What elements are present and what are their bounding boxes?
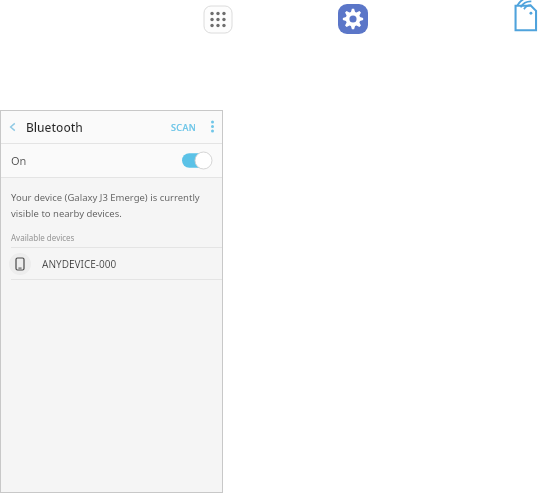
staticText: ANYDEVICE-000 bbox=[42, 257, 117, 271]
button[interactable]: SCAN bbox=[167, 121, 201, 133]
staticText: Available devices bbox=[11, 232, 75, 243]
button[interactable]: On bbox=[0, 144, 223, 177]
button[interactable]: More options bbox=[201, 110, 223, 143]
staticText: Your device (Galaxy J3 Emerge) is curren… bbox=[11, 191, 200, 204]
button[interactable]: Back bbox=[0, 110, 26, 143]
button[interactable]: Settings bbox=[336, 2, 370, 36]
staticText: On bbox=[11, 153, 27, 168]
button[interactable]: ANYDEVICE-000 bbox=[0, 248, 223, 279]
button[interactable]: Bluetooth on bbox=[182, 152, 212, 169]
button[interactable]: Apps bbox=[201, 3, 235, 36]
staticText: visible to nearby devices. bbox=[11, 207, 122, 220]
staticText: SCAN bbox=[171, 121, 197, 133]
button[interactable]: NFC tag bbox=[513, 1, 545, 35]
staticText: Bluetooth bbox=[26, 119, 83, 135]
